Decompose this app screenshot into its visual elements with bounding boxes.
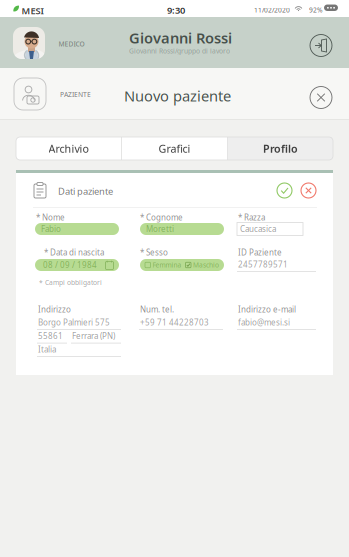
staticText: Ferrara (PN) xyxy=(72,330,115,341)
staticText: Archivio xyxy=(49,141,89,156)
button[interactable]: Grafici xyxy=(122,137,227,160)
staticText: Profilo xyxy=(263,141,298,156)
staticText: PAZIENTE xyxy=(60,90,91,99)
staticText: 92% xyxy=(309,5,323,14)
staticText: 08 / 09 / 1984 xyxy=(43,260,97,270)
button[interactable]: Esci xyxy=(309,33,333,57)
button[interactable]: Archivio xyxy=(16,137,121,160)
staticText: MEDICO xyxy=(58,39,84,48)
staticText: Moretti xyxy=(146,224,174,234)
staticText: * Campi obbligatori xyxy=(39,278,102,287)
staticText: Grafici xyxy=(158,141,190,156)
staticText: * Razza xyxy=(238,212,265,223)
button[interactable]: Conferma xyxy=(277,183,292,198)
staticText: Num. tel. xyxy=(140,304,174,315)
staticText: Giovanni Rossi/gruppo di lavoro xyxy=(129,46,230,55)
staticText: Giovanni Rossi xyxy=(129,28,232,47)
staticText: 11/02/2020 xyxy=(254,5,290,14)
staticText: Fabio xyxy=(41,224,61,234)
staticText: fabio@mesi.si xyxy=(238,317,290,328)
staticText: * Nome xyxy=(36,212,65,223)
staticText: MESI xyxy=(21,4,43,17)
staticText: Femmina xyxy=(152,261,181,269)
staticText: * Cognome xyxy=(140,212,183,223)
staticText: 9:30 xyxy=(167,4,185,16)
staticText: Nuovo paziente xyxy=(124,86,231,105)
staticText: * Sesso xyxy=(140,247,168,258)
staticText: 55861 xyxy=(38,330,63,341)
staticText: Borgo Palmieri 575 xyxy=(38,317,110,328)
staticText: +59 71 44228703 xyxy=(140,317,209,328)
staticText: Dati paziente xyxy=(58,185,113,197)
staticText: Indirizzo e-mail xyxy=(238,304,296,315)
button[interactable]: Annulla xyxy=(301,183,316,198)
staticText: 2457789571 xyxy=(238,259,288,270)
button[interactable]: Profilo xyxy=(228,137,333,160)
staticText: Italia xyxy=(38,344,56,355)
staticText: ID Paziente xyxy=(238,247,282,258)
staticText: Caucasica xyxy=(240,224,276,234)
staticText: Indirizzo xyxy=(38,304,71,315)
staticText: Maschio xyxy=(193,261,219,269)
staticText: * Data di nascita xyxy=(44,247,104,258)
button[interactable]: Chiudi xyxy=(309,85,333,109)
